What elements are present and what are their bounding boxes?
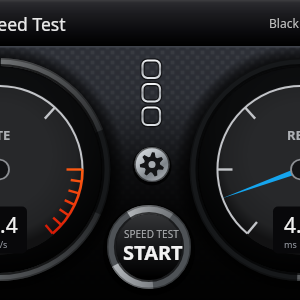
staticText: START: [123, 239, 183, 266]
staticText: SPEED TEST: [124, 227, 179, 241]
staticText: 4.1: [284, 211, 300, 240]
staticText: RESP: [287, 126, 300, 144]
button[interactable]: [108, 205, 192, 289]
staticText: Speed Test: [0, 12, 66, 36]
button[interactable]: Settings: [133, 147, 170, 184]
button[interactable]: Option 3: [141, 106, 162, 127]
staticText: RATE: [0, 126, 11, 144]
button[interactable]: Option 1: [141, 59, 162, 80]
button[interactable]: Option 2: [141, 83, 162, 104]
staticText: Black: [269, 15, 299, 31]
staticText: 0.4: [0, 211, 18, 240]
staticText: ms: [284, 238, 297, 250]
staticText: Mb/s: [0, 238, 8, 250]
